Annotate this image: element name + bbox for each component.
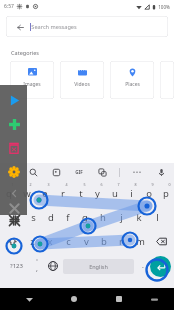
- button[interactable]: Videos: [60, 61, 104, 99]
- staticText: b: [101, 235, 107, 248]
- button[interactable]: 0: [157, 181, 174, 205]
- staticText: z: [30, 235, 35, 248]
- staticText: h: [100, 211, 106, 224]
- button[interactable]: Translate: [95, 165, 109, 179]
- button[interactable]: l: [148, 205, 166, 229]
- button[interactable]: Recents: [110, 290, 128, 308]
- staticText: 4: [65, 182, 68, 187]
- button[interactable]: Back: [15, 22, 25, 32]
- button[interactable]: Search: [26, 165, 40, 179]
- button[interactable]: Back: [20, 290, 38, 308]
- button[interactable]: 3: [36, 181, 54, 205]
- button[interactable]: More: [130, 165, 144, 179]
- staticText: Videos: [74, 81, 90, 88]
- button[interactable]: GIF: [72, 165, 86, 179]
- staticText: °: [36, 258, 38, 264]
- staticText: g: [82, 211, 88, 224]
- button[interactable]: Close: [4, 202, 24, 215]
- button[interactable]: c: [59, 229, 77, 253]
- staticText: 6:57: [4, 3, 14, 10]
- staticText: 6: [100, 182, 103, 187]
- button[interactable]: Add: [4, 114, 24, 134]
- button[interactable]: 2: [18, 181, 36, 205]
- button[interactable]: English: [63, 259, 134, 274]
- button[interactable]: d: [42, 205, 59, 229]
- button[interactable]: 9: [140, 181, 157, 205]
- staticText: Search messages: [31, 23, 77, 31]
- button[interactable]: .: [136, 253, 150, 279]
- button[interactable]: Hide keyboard: [146, 291, 162, 307]
- button[interactable]: Backspace: [149, 229, 174, 253]
- staticText: 7: [117, 182, 120, 187]
- button[interactable]: a: [8, 205, 25, 229]
- button[interactable]: v: [77, 229, 95, 253]
- button[interactable]: Back: [6, 16, 168, 37]
- button[interactable]: 6: [89, 181, 106, 205]
- staticText: 100%: [158, 4, 170, 10]
- staticText: 3: [47, 182, 50, 187]
- button[interactable]: Places: [110, 61, 154, 99]
- staticText: o: [146, 187, 152, 200]
- button[interactable]: Settings: [4, 162, 24, 182]
- button[interactable]: j: [112, 205, 130, 229]
- staticText: a: [14, 211, 20, 224]
- button[interactable]: Enter: [150, 256, 171, 277]
- button[interactable]: 7: [106, 181, 123, 205]
- staticText: t: [79, 187, 83, 200]
- button[interactable]: Home: [65, 290, 83, 308]
- button[interactable]: n: [113, 229, 131, 253]
- button[interactable]: s: [25, 205, 42, 229]
- staticText: .: [142, 261, 144, 271]
- staticText: m: [136, 235, 145, 248]
- button[interactable]: k: [130, 205, 148, 229]
- staticText: GIF: [75, 169, 83, 175]
- staticText: s: [31, 211, 36, 224]
- staticText: ?123: [10, 262, 23, 270]
- button[interactable]: Images: [10, 61, 54, 99]
- button[interactable]: Shift: [0, 229, 24, 253]
- button[interactable]: °: [29, 253, 45, 279]
- staticText: y: [95, 187, 100, 200]
- staticText: q: [6, 187, 12, 200]
- staticText: r: [61, 187, 65, 200]
- button[interactable]: Stickers: [49, 165, 63, 179]
- button[interactable]: m: [131, 229, 149, 253]
- staticText: c: [66, 235, 71, 248]
- button[interactable]: b: [95, 229, 113, 253]
- staticText: u: [112, 187, 118, 200]
- button[interactable]: Delete: [4, 138, 24, 158]
- button[interactable]: 1: [0, 181, 18, 205]
- button[interactable]: f: [59, 205, 76, 229]
- button[interactable]: 5: [72, 181, 89, 205]
- staticText: j: [120, 211, 123, 224]
- button[interactable]: [160, 61, 174, 99]
- staticText: 8: [134, 182, 137, 187]
- staticText: 2: [29, 182, 32, 187]
- button[interactable]: Change language: [45, 253, 61, 279]
- button[interactable]: z: [24, 229, 41, 253]
- button[interactable]: 8: [123, 181, 140, 205]
- staticText: k: [136, 211, 142, 224]
- staticText: n: [119, 235, 125, 248]
- staticText: x: [47, 235, 53, 248]
- staticText: Categories: [11, 49, 39, 56]
- staticText: 5: [83, 182, 86, 187]
- staticText: e: [42, 187, 48, 200]
- button[interactable]: Voice input: [154, 165, 168, 179]
- staticText: w: [23, 187, 31, 200]
- staticText: English: [89, 263, 108, 270]
- button[interactable]: h: [94, 205, 112, 229]
- staticText: v: [84, 235, 89, 248]
- button[interactable]: Previous: [5, 184, 23, 202]
- button[interactable]: Play: [4, 90, 24, 110]
- button[interactable]: x: [41, 229, 59, 253]
- button[interactable]: g: [76, 205, 94, 229]
- staticText: d: [48, 211, 54, 224]
- staticText: p: [163, 187, 169, 200]
- button[interactable]: ?123: [3, 253, 29, 279]
- staticText: ,: [36, 264, 38, 274]
- staticText: i: [130, 187, 133, 200]
- button[interactable]: 4: [54, 181, 72, 205]
- staticText: Places: [125, 81, 140, 88]
- staticText: 0: [168, 182, 171, 187]
